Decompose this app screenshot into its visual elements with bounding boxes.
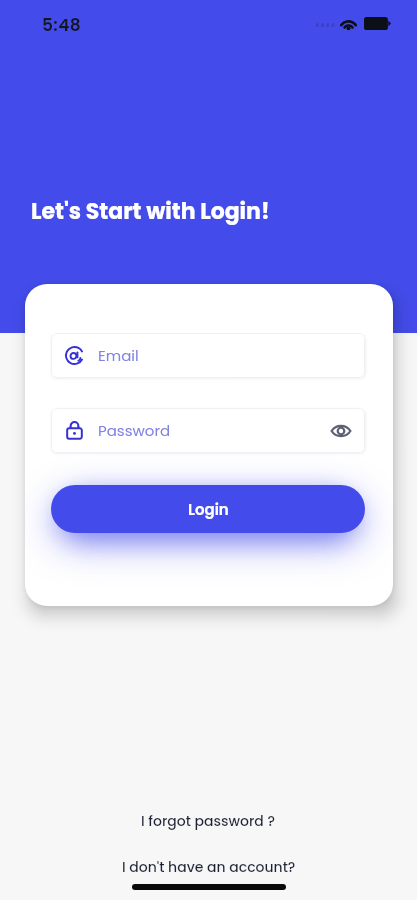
staticText: Login: [188, 499, 229, 520]
button[interactable]: Email: [51, 333, 365, 378]
staticText: Let's Start with Login!: [31, 196, 270, 227]
staticText: I don't have an account?: [122, 857, 296, 877]
staticText: I forgot password ?: [141, 811, 276, 831]
button[interactable]: I forgot password ?: [127, 805, 290, 837]
button[interactable]: Login: [51, 485, 365, 533]
staticText: Password: [98, 420, 171, 441]
button[interactable]: Show password: [329, 419, 353, 443]
staticText: Email: [98, 345, 139, 366]
staticText: 5:48: [42, 13, 82, 37]
button[interactable]: I don't have an account?: [108, 851, 310, 883]
button[interactable]: Password: [51, 408, 365, 453]
